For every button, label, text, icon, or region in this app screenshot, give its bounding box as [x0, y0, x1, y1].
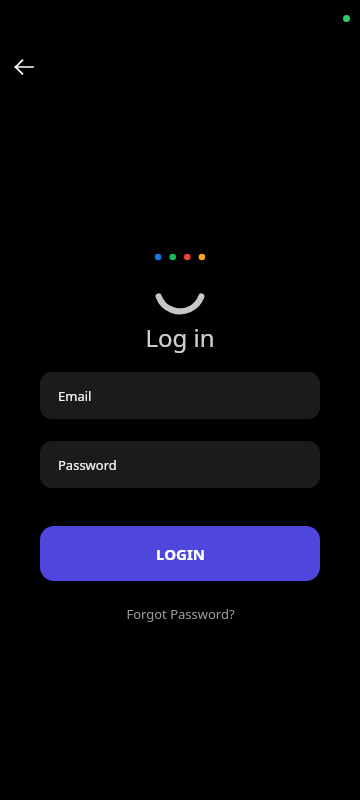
- staticText: Password: [58, 456, 117, 474]
- staticText: Forgot Password?: [126, 605, 235, 623]
- staticText: LOGIN: [156, 544, 205, 564]
- button[interactable]: Email: [40, 372, 320, 419]
- staticText: Log in: [145, 321, 215, 354]
- button[interactable]: Back: [8, 51, 40, 83]
- staticText: Email: [58, 387, 92, 405]
- button[interactable]: Password: [40, 441, 320, 488]
- button[interactable]: Forgot Password?: [118, 601, 243, 627]
- button[interactable]: LOGIN: [40, 526, 320, 581]
